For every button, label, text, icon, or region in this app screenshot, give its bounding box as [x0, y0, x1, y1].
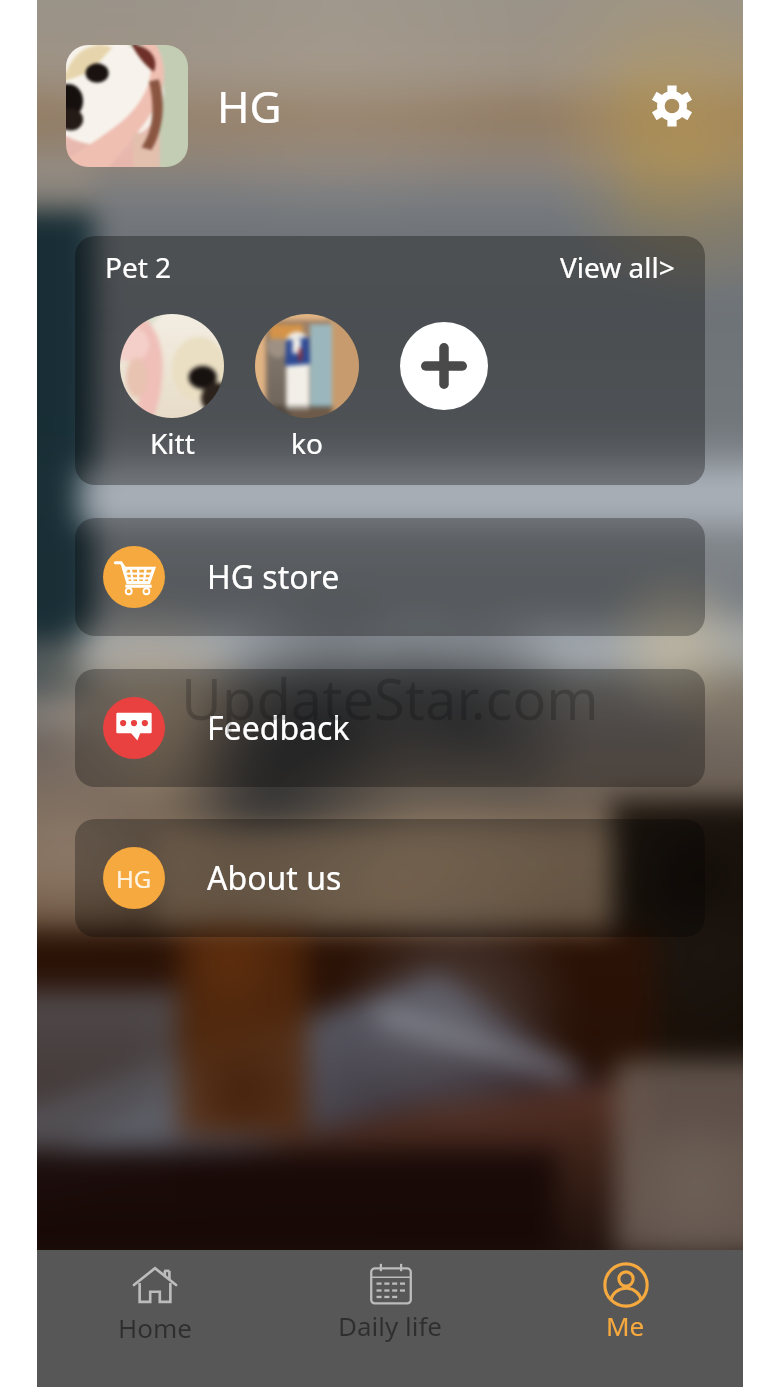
- staticText: HG store: [207, 555, 340, 599]
- staticText: Pet 2: [105, 248, 172, 286]
- button[interactable]: HG: [75, 819, 705, 937]
- button[interactable]: Kitt: [120, 314, 224, 462]
- staticText: Kitt: [150, 424, 195, 462]
- staticText: Feedback: [207, 706, 350, 750]
- staticText: HG: [217, 76, 282, 136]
- staticText: ko: [291, 424, 323, 462]
- button[interactable]: Daily life: [273, 1250, 508, 1387]
- button[interactable]: Home: [37, 1250, 273, 1387]
- button[interactable]: Feedback: [75, 669, 705, 787]
- button[interactable]: HG store: [75, 518, 705, 636]
- staticText: About us: [207, 856, 342, 900]
- staticText: Me: [606, 1308, 645, 1343]
- button[interactable]: Settings: [643, 77, 701, 135]
- button[interactable]: Pet 2: [75, 236, 705, 485]
- staticText: Home: [118, 1310, 192, 1345]
- button[interactable]: Me: [508, 1250, 743, 1387]
- button[interactable]: Add pet: [400, 322, 488, 410]
- staticText: UpdateStar.com: [181, 660, 599, 736]
- staticText: Daily life: [338, 1308, 443, 1343]
- button[interactable]: ko: [255, 314, 359, 462]
- staticText: View all>: [560, 248, 675, 286]
- button[interactable]: Profile photo: [66, 45, 188, 167]
- button[interactable]: View all>: [560, 248, 675, 286]
- staticText: HG: [116, 862, 152, 895]
